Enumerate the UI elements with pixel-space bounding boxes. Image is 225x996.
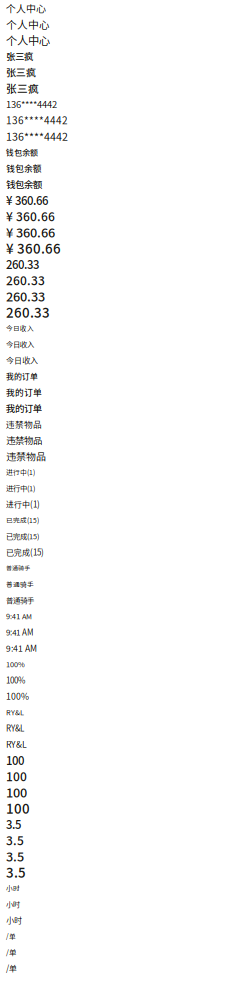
staticText: 136****4442 (6, 113, 68, 127)
staticText: 已完成(15) (6, 531, 39, 541)
staticText: 小时 (6, 883, 20, 893)
staticText: 小时 (6, 914, 22, 926)
staticText: 136****4442 (6, 97, 57, 111)
staticText: 普通骑手 (6, 564, 30, 572)
staticText: RY&L (6, 738, 27, 750)
staticText: 今日收入 (6, 339, 34, 349)
staticText: 260.33 (6, 256, 39, 272)
staticText: ¥ 360.66 (6, 223, 55, 241)
staticText: 100 (6, 752, 24, 768)
staticText: 100 (6, 767, 27, 785)
staticText: 9:41 AM (6, 626, 33, 638)
staticText: 我的订单 (6, 386, 42, 398)
staticText: 钱包余额 (6, 146, 38, 158)
staticText: 100 (6, 783, 27, 801)
staticText: 100% (6, 659, 25, 669)
staticText: 260.33 (6, 302, 50, 322)
staticText: 已完成(15) (6, 546, 44, 558)
staticText: 9:41 AM (6, 642, 37, 654)
staticText: 进行中(1) (6, 498, 40, 510)
staticText: 张三疯 (6, 80, 39, 96)
staticText: 今日收入 (6, 354, 38, 366)
staticText: /单 (6, 931, 16, 941)
staticText: 个人中心 (6, 32, 50, 48)
staticText: 3.5 (6, 831, 24, 849)
staticText: 张三疯 (6, 49, 33, 63)
staticText: ¥ 360.66 (6, 238, 61, 258)
staticText: /单 (6, 962, 17, 974)
staticText: 我的订单 (6, 401, 42, 415)
staticText: 100 (6, 798, 30, 818)
staticText: 260.33 (6, 271, 45, 289)
staticText: 136****4442 (6, 128, 68, 144)
staticText: /单 (6, 947, 16, 957)
staticText: 我的订单 (6, 370, 38, 382)
staticText: 钱包余额 (6, 177, 42, 191)
staticText: 普通骑手 (6, 579, 34, 589)
staticText: 个人中心 (6, 1, 46, 15)
staticText: 张三疯 (6, 65, 36, 79)
staticText: RY&L (6, 722, 24, 734)
staticText: 已完成(15) (6, 515, 39, 525)
staticText: 小时 (6, 899, 20, 909)
staticText: 3.5 (6, 847, 24, 865)
staticText: 进行中(1) (6, 483, 35, 493)
staticText: 9:41 AM (6, 611, 32, 621)
staticText: 3.5 (6, 816, 21, 832)
staticText: 3.5 (6, 862, 26, 882)
staticText: 100% (6, 674, 25, 686)
staticText: RY&L (6, 707, 24, 717)
staticText: 260.33 (6, 287, 45, 305)
staticText: ¥ 360.66 (6, 192, 48, 208)
staticText: 违禁物品 (6, 418, 42, 430)
staticText: 进行中(1) (6, 467, 35, 477)
staticText: ¥ 360.66 (6, 207, 55, 225)
staticText: 违禁物品 (6, 433, 42, 447)
staticText: 普通骑手 (6, 595, 34, 605)
staticText: 今日收入 (6, 323, 34, 333)
staticText: 钱包余额 (6, 162, 42, 174)
staticText: 违禁物品 (6, 449, 46, 463)
staticText: 个人中心 (6, 16, 50, 32)
staticText: 100% (6, 690, 29, 702)
